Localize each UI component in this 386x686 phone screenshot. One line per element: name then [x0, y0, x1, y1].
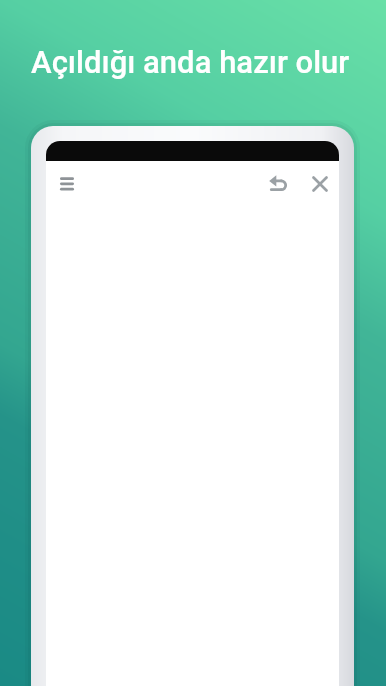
staticText: Açıldığı anda hazır olur [31, 44, 350, 80]
button[interactable] [301, 165, 339, 203]
button[interactable] [259, 165, 297, 203]
button[interactable] [48, 165, 86, 203]
